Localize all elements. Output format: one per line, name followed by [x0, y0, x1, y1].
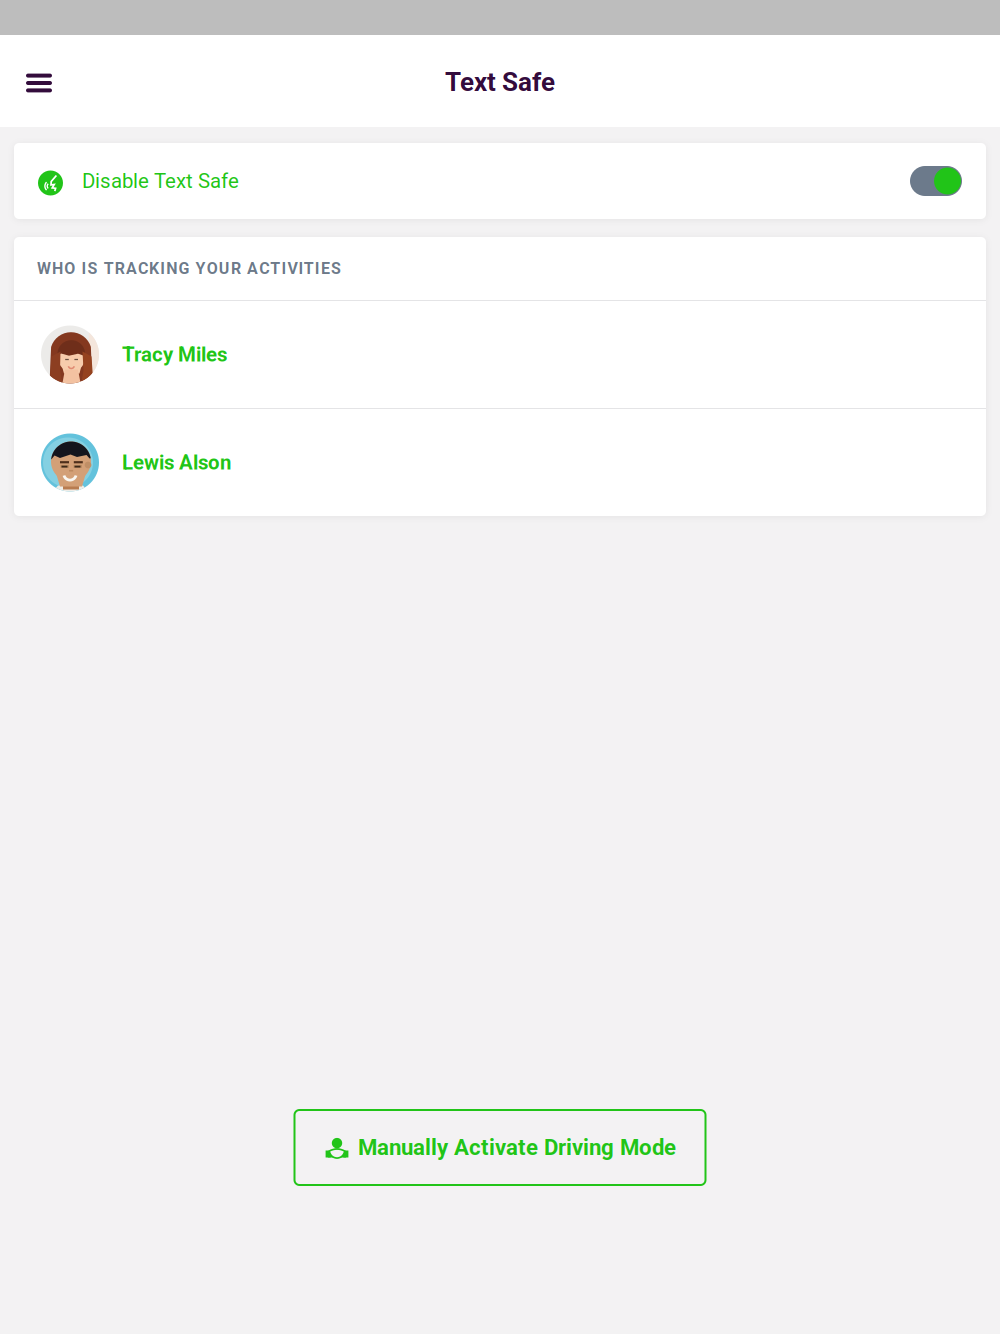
button[interactable]: Menu: [11, 53, 67, 113]
staticText: Tracy Miles: [122, 342, 227, 366]
staticText: Disable Text Safe: [82, 169, 239, 193]
staticText: Manually Activate Driving Mode: [358, 1134, 676, 1160]
button[interactable]: Disable Text Safe: [14, 143, 986, 219]
staticText: WHO IS TRACKING YOUR ACTIVITIES: [37, 259, 341, 278]
staticText: Lewis Alson: [122, 450, 231, 474]
staticText: Text Safe: [445, 67, 555, 97]
button[interactable]: Lewis Alson: [14, 409, 986, 516]
button[interactable]: Manually Activate Driving Mode: [294, 1110, 705, 1185]
button[interactable]: Tracy Miles: [14, 301, 986, 408]
